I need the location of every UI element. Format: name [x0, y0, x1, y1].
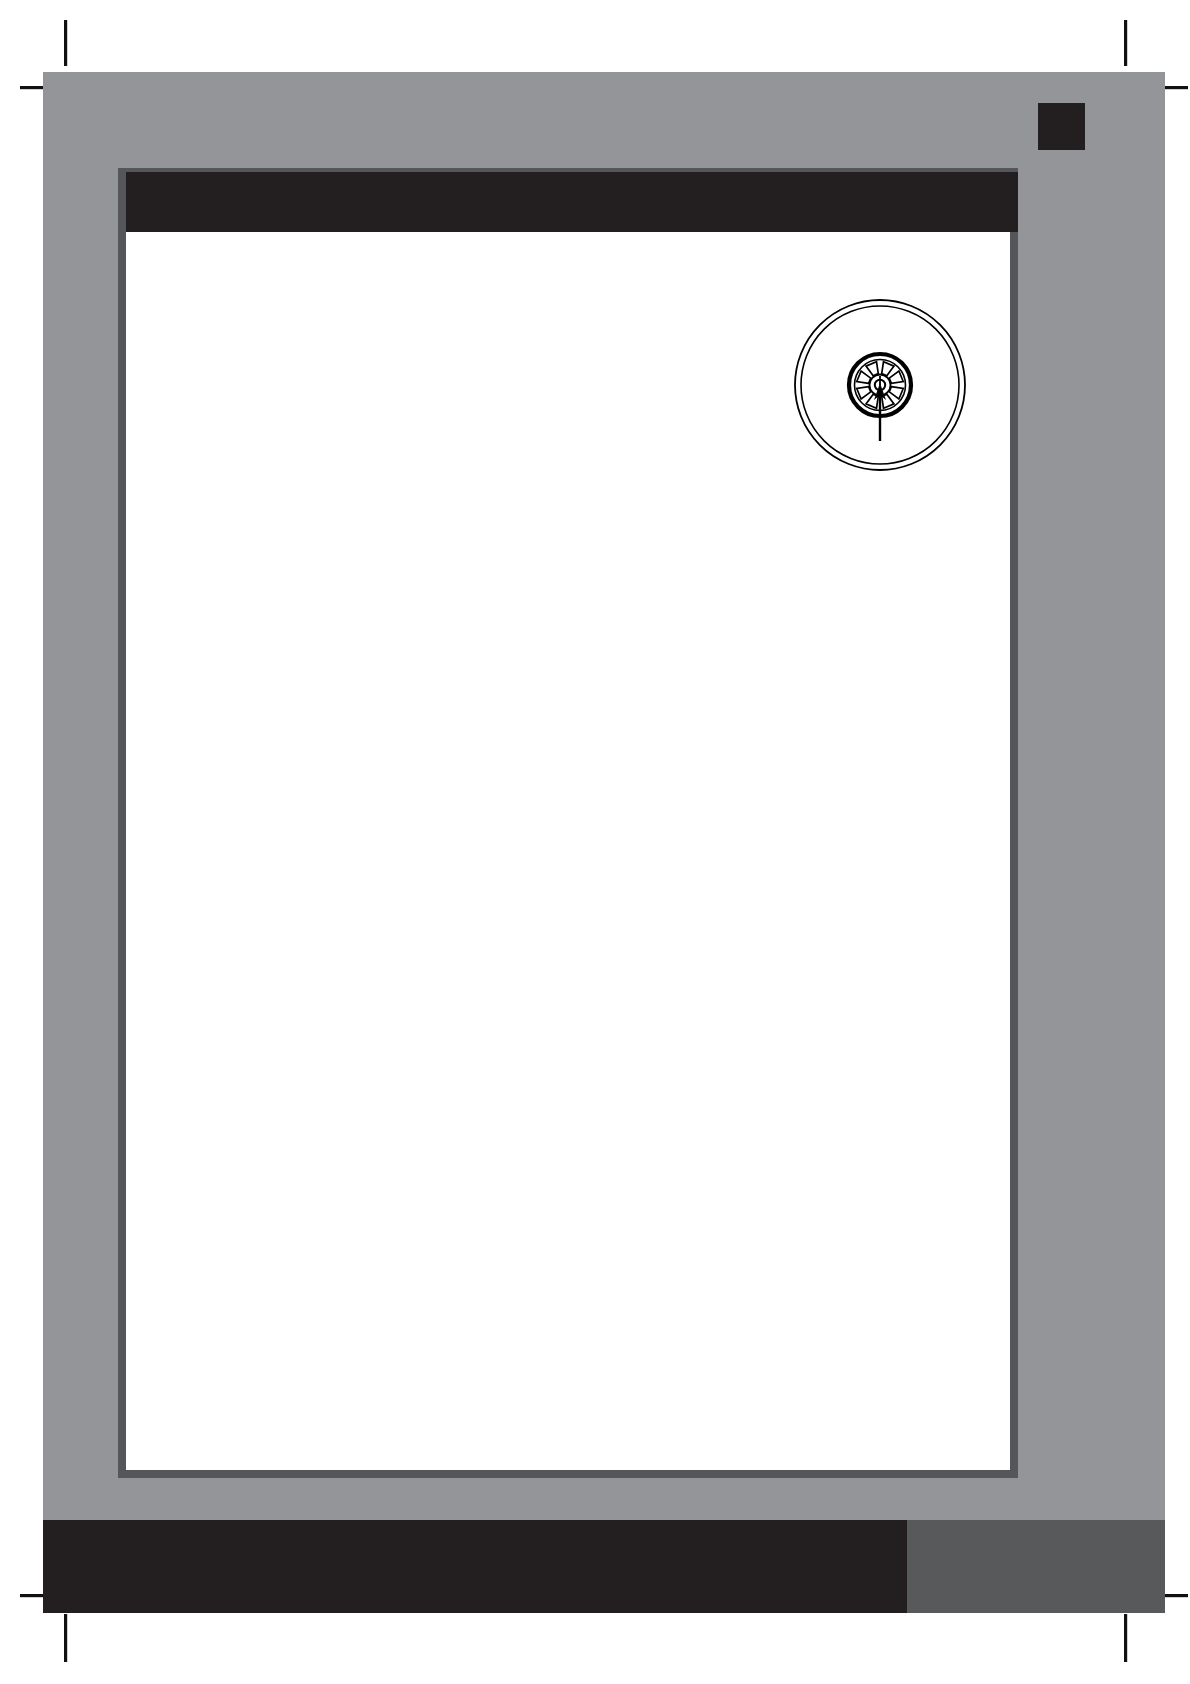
button[interactable]: Document page preview: [0, 0, 1190, 1684]
